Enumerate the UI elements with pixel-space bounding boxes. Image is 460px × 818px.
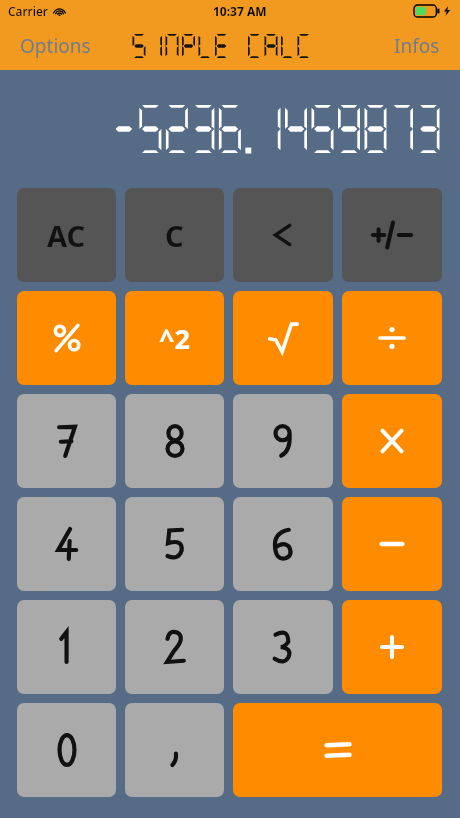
button[interactable]: Backspace <box>233 188 333 282</box>
staticText: AC <box>47 216 86 255</box>
button[interactable]: Plus <box>342 600 442 694</box>
button[interactable]: All clear <box>17 188 116 282</box>
button[interactable]: Eight <box>125 394 224 488</box>
button[interactable]: Percent <box>17 291 116 385</box>
button[interactable]: Divide <box>342 291 442 385</box>
button[interactable]: Toggle sign <box>342 188 442 282</box>
staticText: Options <box>20 33 91 59</box>
button[interactable]: Infos <box>388 27 446 65</box>
staticText: ^2 <box>159 320 190 357</box>
staticText: Carrier <box>8 3 48 19</box>
staticText: C <box>165 216 184 255</box>
staticText: Infos <box>394 33 440 59</box>
button[interactable]: Nine <box>233 394 333 488</box>
staticText: 10:37 AM <box>213 3 267 19</box>
button[interactable]: Two <box>125 600 224 694</box>
button[interactable]: Minus <box>342 497 442 591</box>
button[interactable]: Three <box>233 600 333 694</box>
button[interactable]: Zero <box>17 703 116 797</box>
button[interactable]: Square root <box>233 291 333 385</box>
button[interactable]: Four <box>17 497 116 591</box>
button[interactable]: Six <box>233 497 333 591</box>
button[interactable]: Five <box>125 497 224 591</box>
button[interactable]: Square <box>125 291 224 385</box>
button[interactable]: Seven <box>17 394 116 488</box>
button[interactable]: Decimal separator <box>125 703 224 797</box>
button[interactable]: Equals <box>233 703 442 797</box>
button[interactable]: Multiply <box>342 394 442 488</box>
button[interactable]: One <box>17 600 116 694</box>
button[interactable]: Clear <box>125 188 224 282</box>
button[interactable]: Options <box>14 27 97 65</box>
